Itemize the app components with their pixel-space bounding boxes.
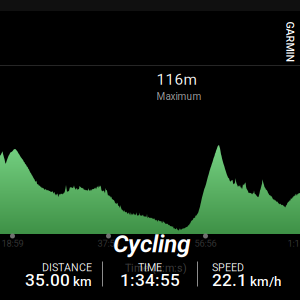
staticText: 22.1 km/h <box>212 270 281 290</box>
staticText: 1:34:55 <box>120 270 180 290</box>
staticText: 35.00 km <box>25 270 92 290</box>
button[interactable]: TIME <box>103 262 197 287</box>
staticText: 1:15:55 <box>287 238 300 249</box>
staticText: 56:56 <box>194 238 216 249</box>
staticText: TIME <box>138 261 162 274</box>
staticText: GARMIN <box>269 36 300 48</box>
staticText: 116m <box>156 70 196 88</box>
staticText: Time (h:m:s) <box>125 262 187 274</box>
staticText: 18:59 <box>1 238 23 249</box>
button[interactable]: SPEED <box>212 262 300 287</box>
staticText: Maximum <box>156 91 201 102</box>
staticText: DISTANCE <box>42 261 92 274</box>
staticText: Cycling <box>113 230 191 258</box>
staticText: 37:58 <box>97 238 119 249</box>
staticText: SPEED <box>212 261 244 274</box>
button[interactable]: DISTANCE <box>0 262 92 287</box>
